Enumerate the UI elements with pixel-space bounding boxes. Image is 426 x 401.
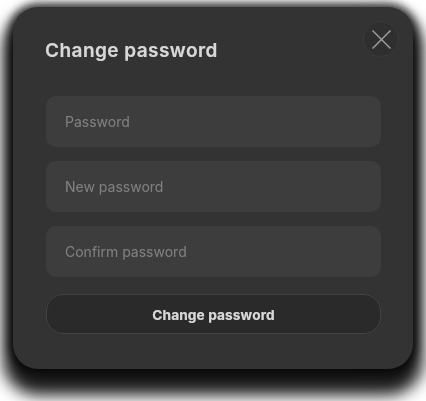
staticText: New password	[65, 178, 164, 195]
button[interactable]: Close	[363, 21, 399, 57]
staticText: Password	[65, 113, 130, 130]
button[interactable]: Confirm password	[46, 226, 381, 277]
staticText: Confirm password	[65, 243, 187, 260]
staticText: Change password	[45, 39, 218, 62]
button[interactable]: Password	[46, 96, 381, 147]
button[interactable]: Change password	[46, 294, 381, 334]
button[interactable]: New password	[46, 161, 381, 212]
staticText: Change password	[152, 307, 275, 324]
